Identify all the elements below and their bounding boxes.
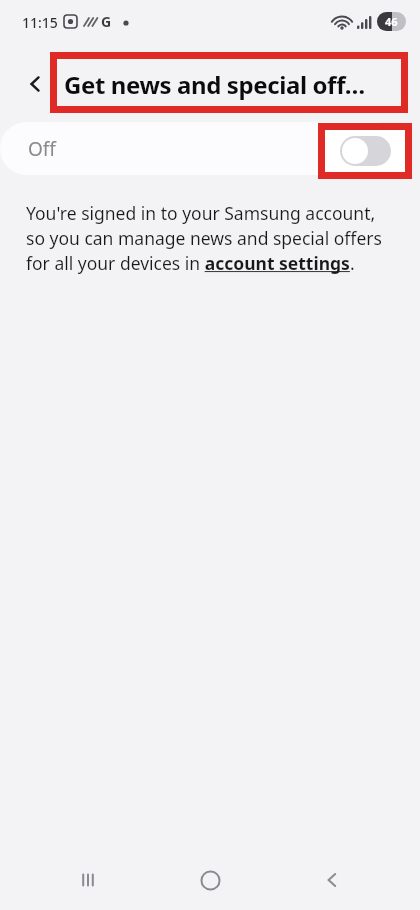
button[interactable]: Back <box>296 852 368 908</box>
staticText: 46 <box>385 14 398 29</box>
button[interactable]: Off <box>0 122 400 175</box>
button[interactable]: Toggle news and special offers <box>340 136 391 166</box>
staticText: 11:15 <box>22 13 58 32</box>
button[interactable]: Home <box>174 852 246 908</box>
button[interactable]: Back <box>14 62 56 106</box>
staticText: G <box>101 12 112 31</box>
button[interactable]: Recents <box>52 852 124 908</box>
button[interactable]: Get news and special off… <box>64 68 365 101</box>
staticText: You're signed in to your Samsung account… <box>26 201 398 275</box>
staticText: Off <box>28 136 56 162</box>
